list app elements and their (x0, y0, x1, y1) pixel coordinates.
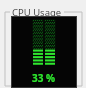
button[interactable]: CPU Usage meter, 33 percent (0, 0, 86, 88)
